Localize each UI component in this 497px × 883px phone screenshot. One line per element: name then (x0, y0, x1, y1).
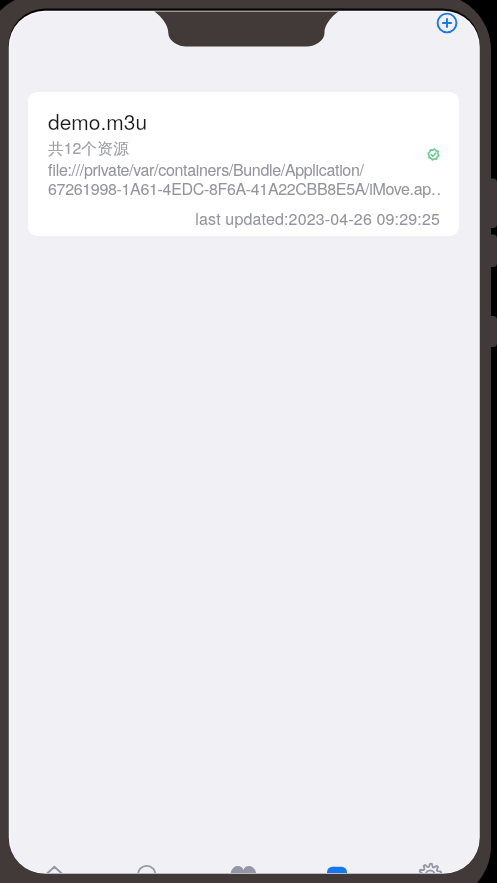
staticText: 共12个资源 (48, 136, 129, 159)
button[interactable]: Home (20, 863, 101, 873)
button[interactable]: Favorites (195, 863, 290, 873)
staticText: file:///private/var/containers/Bundle/Ap… (48, 158, 440, 200)
button[interactable]: Search (101, 863, 195, 873)
button[interactable]: Playlists (290, 863, 383, 873)
button[interactable]: Add playlist (435, 12, 459, 35)
button[interactable]: demo.m3u (28, 92, 459, 236)
button[interactable]: Settings (384, 863, 479, 873)
staticText: demo.m3u (48, 106, 148, 136)
staticText: last updated:2023-04-26 09:29:25 (48, 207, 440, 230)
